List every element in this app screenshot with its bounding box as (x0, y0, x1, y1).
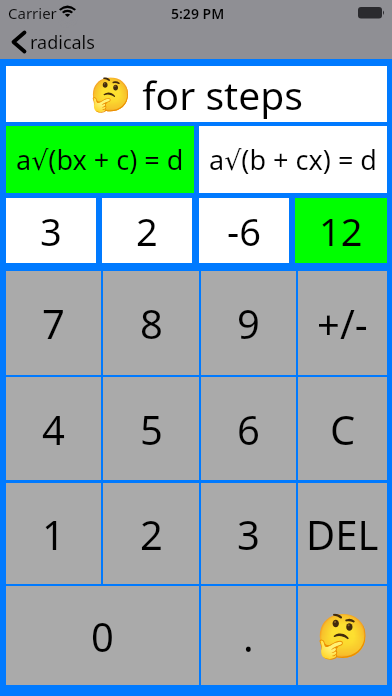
button[interactable]: 9 (201, 271, 296, 375)
button[interactable]: 0 (6, 586, 199, 685)
staticText: . (243, 609, 254, 663)
button[interactable]: +/- (298, 271, 387, 375)
staticText: 🤔 (90, 75, 132, 114)
staticText: 4 (42, 402, 65, 456)
button[interactable]: DEL (298, 483, 387, 584)
button[interactable]: 6 (201, 377, 296, 480)
button[interactable]: 3 (201, 483, 296, 584)
staticText: -6 (227, 205, 261, 257)
staticText: 9 (237, 296, 260, 350)
button[interactable]: 5 (103, 377, 199, 480)
staticText: 5:29 PM (171, 4, 225, 23)
staticText: 7 (42, 296, 65, 350)
staticText: for steps (132, 68, 303, 121)
button[interactable]: a√(bx + c) = d (6, 126, 194, 193)
staticText: a√(bx + c) = d (16, 141, 184, 178)
button[interactable]: 3 (6, 198, 96, 263)
staticText: 5 (140, 402, 163, 456)
staticText: radicals (30, 30, 95, 55)
staticText: a√(b + cx) = d (209, 141, 377, 178)
staticText: Carrier (8, 3, 57, 23)
button[interactable]: 12 (295, 198, 387, 263)
button[interactable]: 7 (6, 271, 101, 375)
button[interactable]: radicals (6, 27, 116, 57)
staticText: 8 (140, 296, 163, 350)
button[interactable]: 8 (103, 271, 199, 375)
button[interactable]: 2 (102, 198, 192, 263)
button[interactable]: 2 (103, 483, 199, 584)
staticText: C (330, 402, 356, 456)
button[interactable]: C (298, 377, 387, 480)
button[interactable]: 🤔 (6, 66, 387, 122)
staticText: 🤔 (316, 611, 370, 661)
staticText: 6 (237, 402, 260, 456)
staticText: 0 (91, 609, 114, 663)
staticText: 12 (319, 205, 363, 257)
staticText: +/- (317, 296, 368, 350)
button[interactable]: 1 (6, 483, 101, 584)
button[interactable]: -6 (199, 198, 289, 263)
staticText: 1 (42, 507, 65, 561)
button[interactable]: 4 (6, 377, 101, 480)
staticText: DEL (306, 507, 379, 561)
button[interactable]: . (201, 586, 296, 685)
button[interactable]: 🤔 (298, 586, 387, 685)
staticText: 2 (136, 205, 158, 257)
staticText: 2 (140, 507, 163, 561)
staticText: 3 (40, 205, 62, 257)
staticText: 3 (237, 507, 260, 561)
button[interactable]: a√(b + cx) = d (199, 126, 387, 193)
